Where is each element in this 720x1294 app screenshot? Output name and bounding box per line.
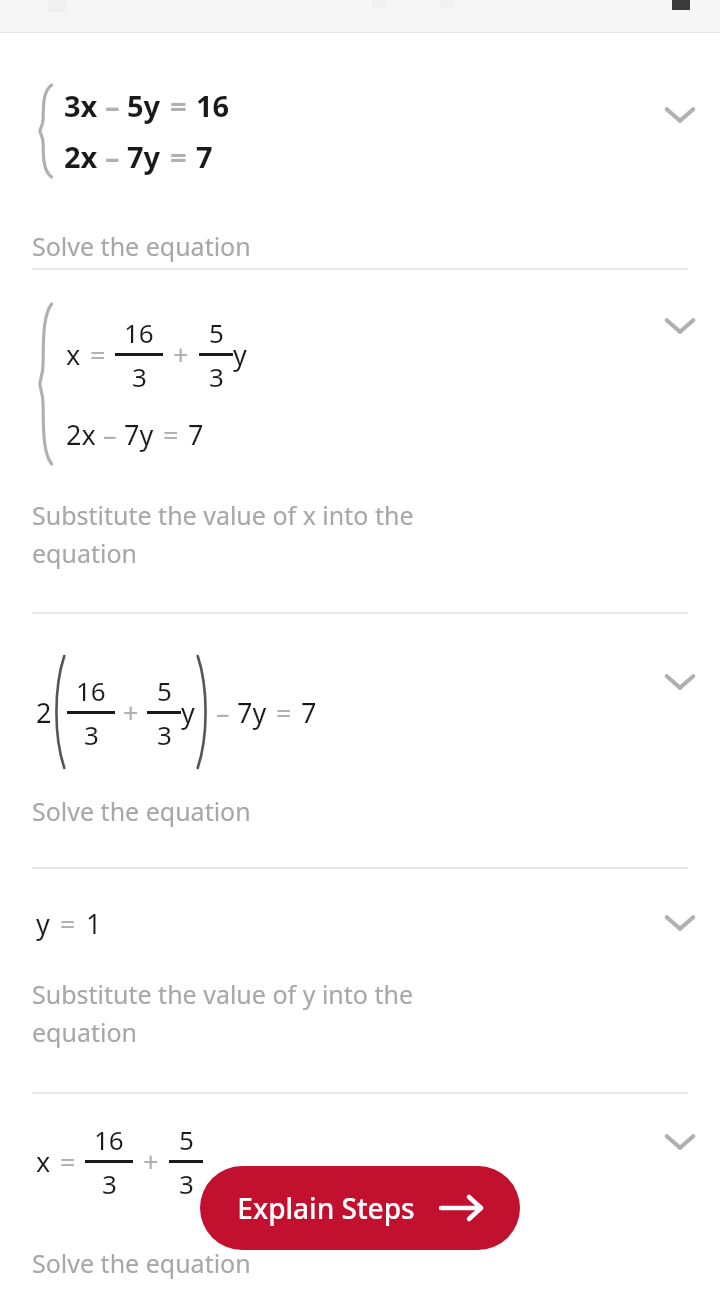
staticText: = xyxy=(170,137,187,176)
button[interactable]: Expand step xyxy=(654,897,706,949)
staticText: y xyxy=(233,336,247,373)
staticText: 3 xyxy=(132,359,147,394)
staticText: – xyxy=(103,416,117,453)
staticText: 7 xyxy=(301,694,317,731)
staticText: Explain Steps xyxy=(237,1189,415,1227)
staticText: Solve the equation xyxy=(32,1246,251,1280)
staticText: = xyxy=(90,336,106,373)
staticText: 3 xyxy=(179,1166,194,1201)
staticText: y xyxy=(181,694,195,731)
staticText: 3 xyxy=(84,717,99,752)
staticText: Substitute the value of y into the equat… xyxy=(32,977,512,1049)
staticText: – xyxy=(216,694,230,731)
staticText: = xyxy=(163,416,179,453)
staticText: + xyxy=(173,336,189,373)
staticText: 7 xyxy=(196,137,213,176)
staticText: 3 xyxy=(209,359,224,394)
staticText: 7y xyxy=(237,694,267,731)
staticText: = xyxy=(170,86,187,125)
staticText: 16 xyxy=(94,1122,124,1157)
staticText: 16 xyxy=(124,315,154,350)
button[interactable]: Expand step xyxy=(654,300,706,352)
staticText: 3 xyxy=(102,1166,117,1201)
staticText: + xyxy=(143,1143,159,1180)
staticText: 5 xyxy=(157,673,172,708)
staticText: + xyxy=(123,694,139,731)
button[interactable]: Expand step xyxy=(654,1116,706,1168)
staticText: 1 xyxy=(86,905,102,942)
staticText: 5y xyxy=(127,86,161,125)
staticText: 3 xyxy=(157,717,172,752)
button[interactable]: Explain Steps xyxy=(200,1166,520,1250)
staticText: x xyxy=(36,1143,51,1180)
staticText: 7 xyxy=(188,416,204,453)
staticText: 7y xyxy=(124,416,154,453)
staticText: 16 xyxy=(76,673,106,708)
staticText: = xyxy=(60,1143,76,1180)
staticText: Solve the equation xyxy=(32,229,251,263)
staticText: 7y xyxy=(127,137,161,176)
button[interactable]: Expand step xyxy=(654,656,706,708)
staticText: x xyxy=(66,336,81,373)
button[interactable]: Expand step xyxy=(654,89,706,141)
staticText: Solve the equation xyxy=(32,794,251,828)
staticText: 2x xyxy=(64,137,98,176)
staticText: – xyxy=(105,137,120,176)
staticText: 3x xyxy=(64,86,98,125)
staticText: 2 xyxy=(36,694,52,731)
staticText: 5 xyxy=(209,315,224,350)
staticText: 2x xyxy=(66,416,96,453)
staticText: = xyxy=(276,694,292,731)
staticText: = xyxy=(60,905,76,942)
staticText: – xyxy=(105,86,120,125)
staticText: 5 xyxy=(179,1122,194,1157)
staticText: Substitute the value of x into the equat… xyxy=(32,498,512,570)
staticText: 16 xyxy=(196,86,230,125)
staticText: y xyxy=(36,905,50,942)
